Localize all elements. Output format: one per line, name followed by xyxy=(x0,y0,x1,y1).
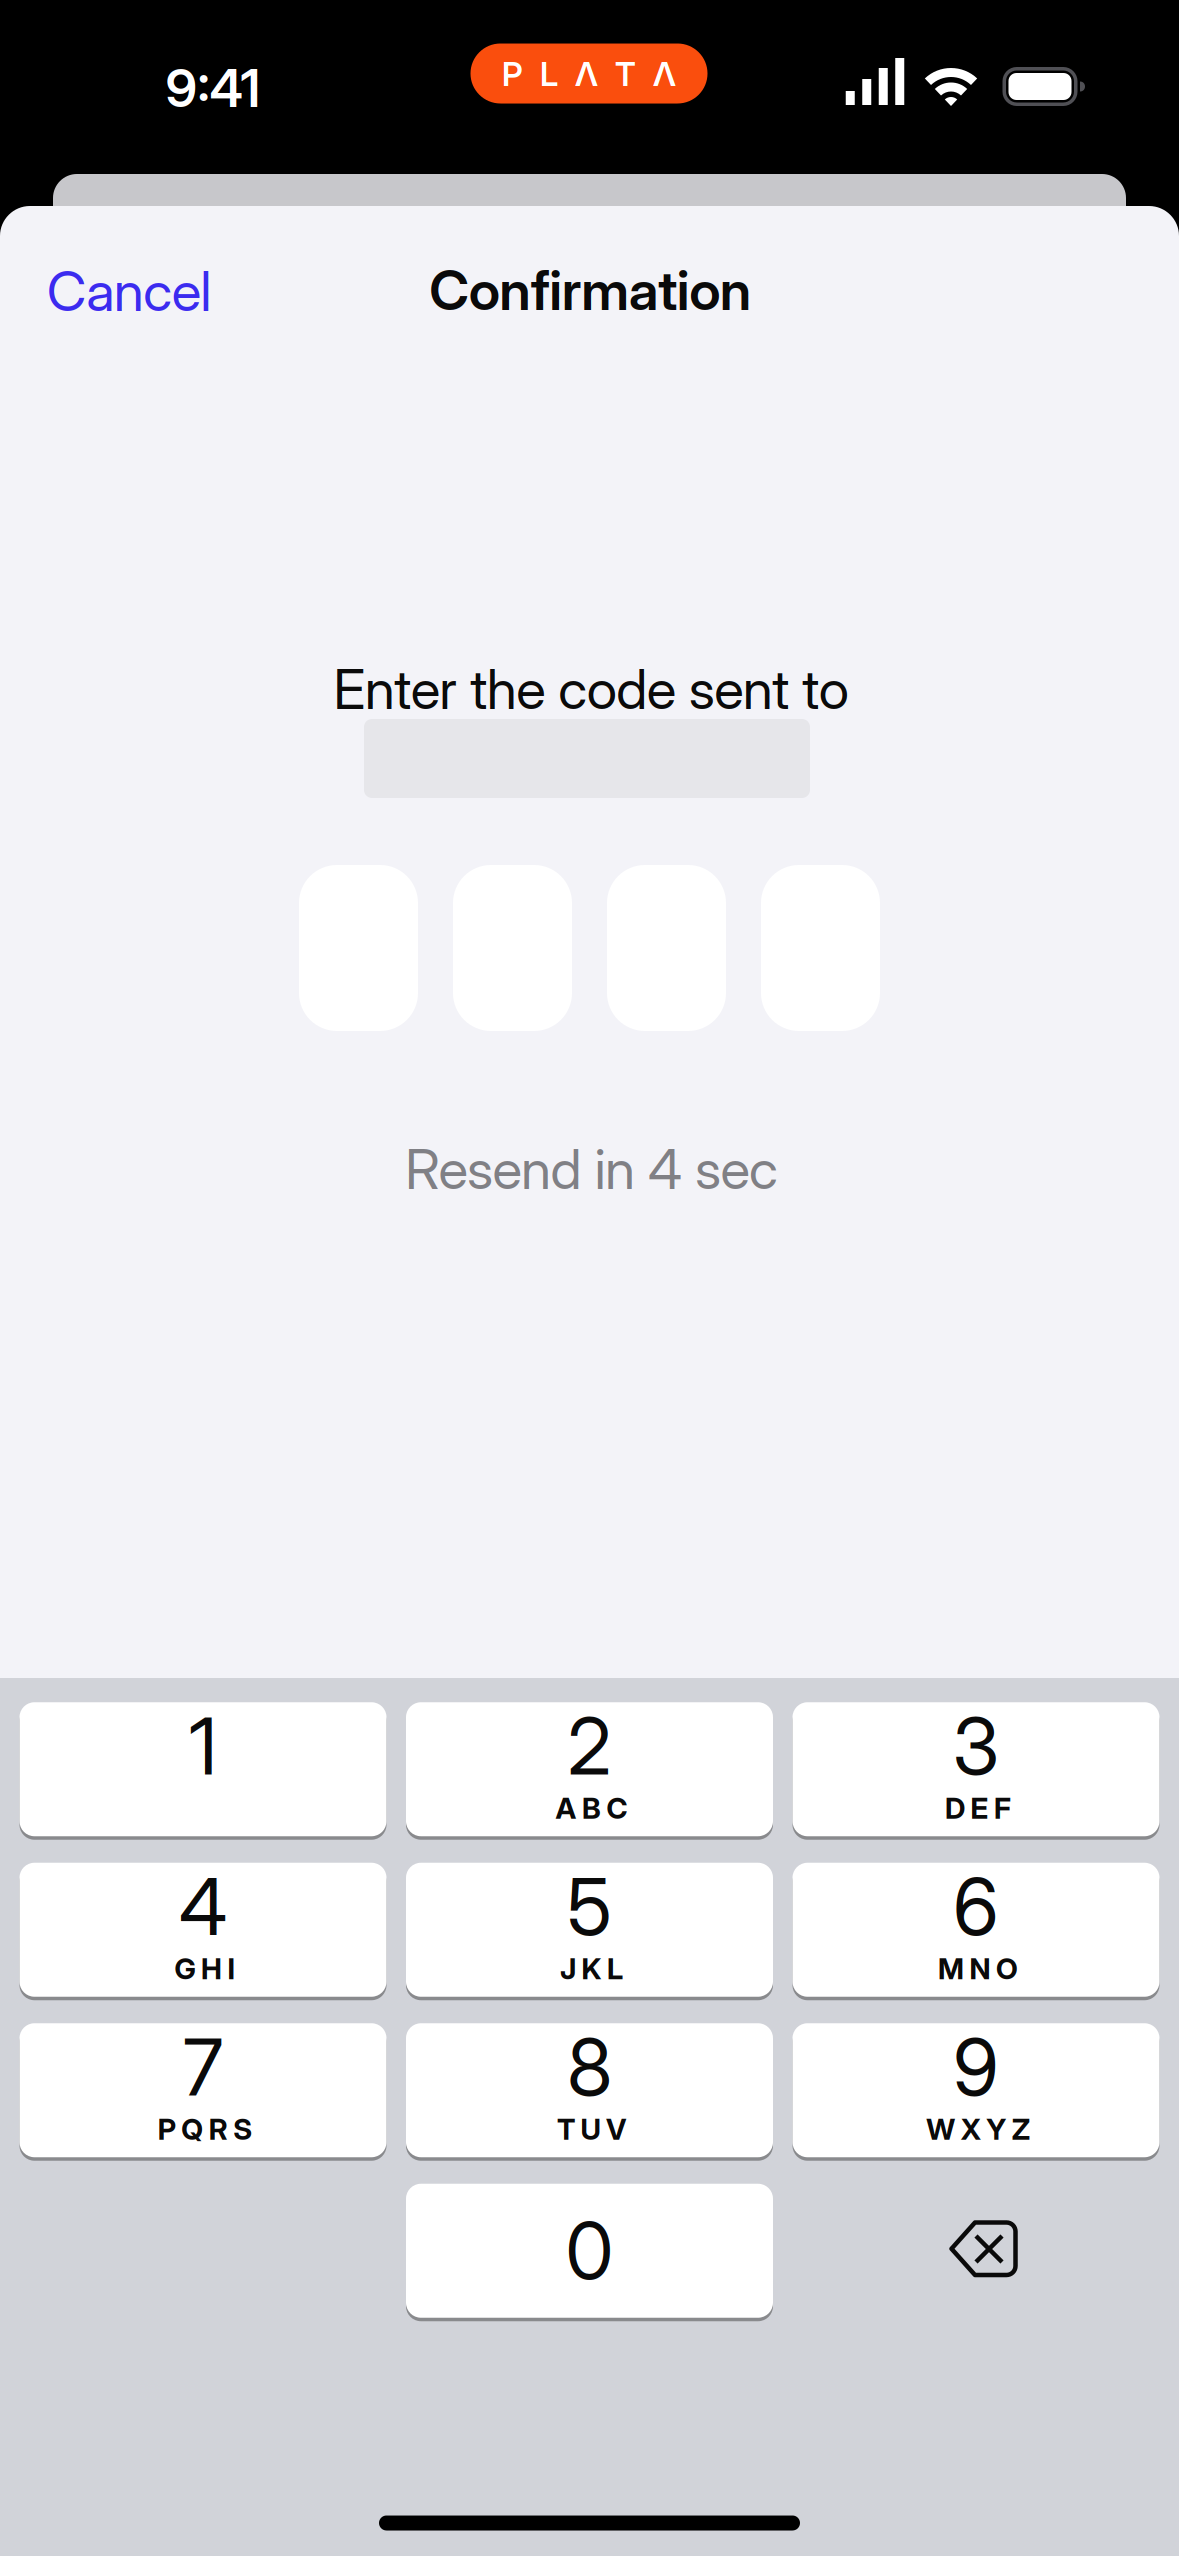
button[interactable]: 2 xyxy=(406,1702,773,1840)
staticText: 0 xyxy=(565,2204,613,2298)
staticText: 5 xyxy=(567,1860,612,1954)
button[interactable]: 0 xyxy=(406,2184,773,2321)
staticText: PLΛTΛ xyxy=(502,54,676,94)
button[interactable]: Cancel xyxy=(39,258,219,324)
button[interactable]: 6 xyxy=(792,1863,1159,2000)
staticText: DEF xyxy=(945,1791,1011,1826)
staticText: 3 xyxy=(952,1699,999,1793)
button[interactable]: 1 xyxy=(19,1702,386,1840)
staticText: 9 xyxy=(953,2020,999,2114)
button[interactable]: Delete xyxy=(929,2200,1038,2298)
staticText: 1 xyxy=(189,1699,217,1793)
staticText: JKL xyxy=(560,1951,623,1986)
button[interactable]: 7 xyxy=(19,2023,386,2161)
button[interactable]: 3 xyxy=(792,1702,1159,1840)
button[interactable]: 4 xyxy=(19,1863,386,2000)
button[interactable]: 5 xyxy=(406,1863,773,2000)
staticText: 6 xyxy=(953,1860,999,1954)
staticText: 7 xyxy=(183,2020,223,2114)
staticText: PQRS xyxy=(158,2112,252,2147)
staticText: TUV xyxy=(557,2112,626,2147)
staticText: Cancel xyxy=(47,258,211,324)
staticText: 9:41 xyxy=(165,56,260,119)
button[interactable]: 8 xyxy=(406,2023,773,2161)
staticText: Resend in 4 sec xyxy=(405,1136,778,1202)
staticText: ABC xyxy=(555,1791,627,1826)
staticText: Enter the code sent to xyxy=(333,656,849,722)
staticText: GHI xyxy=(174,1951,235,1986)
staticText: 2 xyxy=(567,1699,611,1793)
staticText: MNO xyxy=(938,1951,1018,1986)
staticText: WXYZ xyxy=(926,2112,1030,2147)
staticText: Confirmation xyxy=(429,257,752,323)
staticText: 4 xyxy=(179,1860,227,1954)
staticText: 8 xyxy=(567,2020,612,2114)
button[interactable]: 9 xyxy=(792,2023,1159,2161)
